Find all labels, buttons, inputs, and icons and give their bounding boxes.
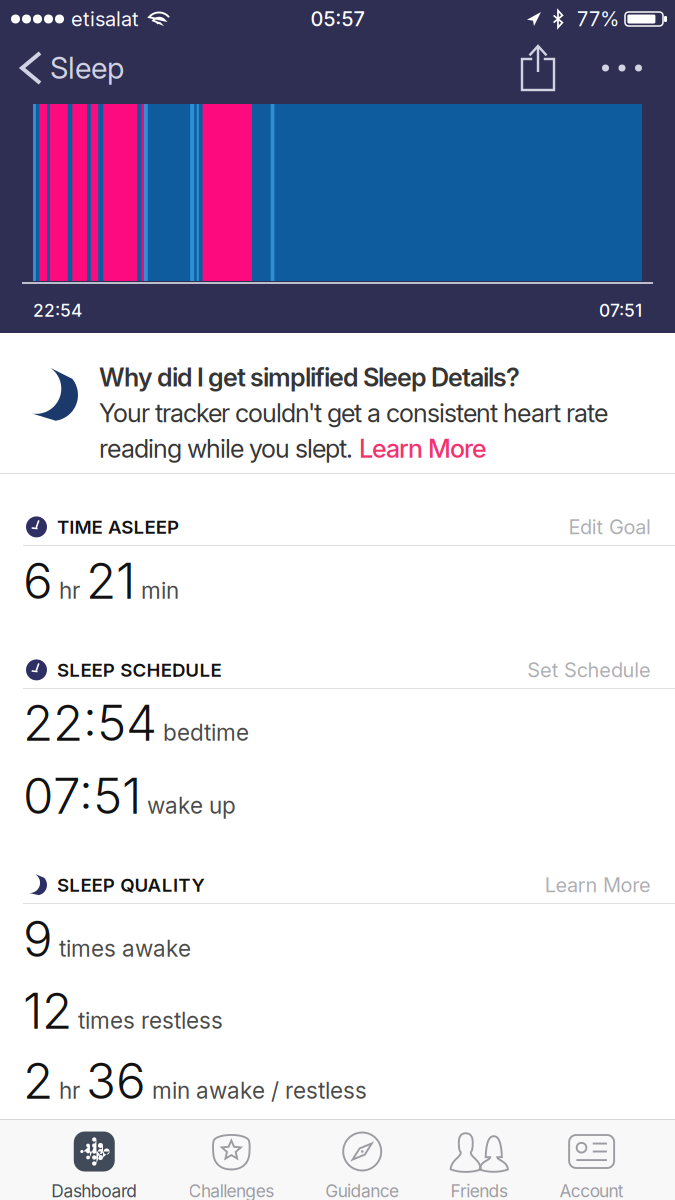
staticText: reading while you slept.	[99, 433, 359, 464]
staticText: Guidance	[325, 1180, 399, 1200]
staticText: Edit Goal	[568, 515, 651, 539]
button[interactable]: Dashboard	[51, 1119, 137, 1200]
staticText: 77%	[577, 7, 619, 31]
button[interactable]: Challenges	[188, 1119, 274, 1200]
staticText: 36	[86, 1051, 146, 1111]
staticText: TIME ASLEEP	[57, 516, 179, 538]
staticText: 2	[23, 1051, 53, 1111]
staticText: 22:54	[33, 300, 82, 321]
staticText: bedtime	[157, 719, 249, 746]
staticText: 07:51	[23, 766, 141, 826]
staticText: Dashboard	[51, 1180, 137, 1200]
staticText: times restless	[72, 1007, 223, 1034]
staticText: Challenges	[188, 1180, 274, 1200]
staticText: times awake	[53, 935, 191, 962]
staticText: min	[135, 577, 179, 604]
button[interactable]: Share	[508, 42, 568, 94]
staticText: wake up	[141, 792, 236, 819]
staticText: 07:51	[599, 300, 642, 321]
staticText: min awake / restless	[146, 1077, 367, 1104]
staticText: Your tracker couldn't get a consistent h…	[99, 398, 608, 428]
button[interactable]: Account	[559, 1119, 624, 1200]
button[interactable]: More options	[568, 42, 675, 94]
button[interactable]: Edit Goal	[550, 509, 651, 545]
button[interactable]: Friends	[450, 1119, 508, 1200]
button[interactable]: Guidance	[325, 1119, 399, 1200]
staticText: 22:54	[23, 693, 157, 753]
staticText: 12	[23, 981, 72, 1041]
staticText: Set Schedule	[527, 658, 651, 682]
staticText: Sleep	[50, 50, 124, 86]
button[interactable]: Set Schedule	[509, 652, 651, 688]
staticText: hr	[53, 1077, 86, 1104]
staticText: SLEEP QUALITY	[57, 874, 204, 896]
staticText: Account	[559, 1180, 624, 1200]
button[interactable]: Why did I get simplified Sleep Details?	[0, 333, 675, 474]
staticText: 6	[23, 551, 53, 611]
button[interactable]: Learn More	[527, 867, 651, 903]
staticText: etisalat	[71, 7, 139, 31]
staticText: 05:57	[310, 7, 364, 31]
staticText: Why did I get simplified Sleep Details?	[99, 362, 520, 393]
button[interactable]: Sleep	[0, 42, 140, 94]
staticText: hr	[53, 577, 86, 604]
staticText: Friends	[451, 1180, 508, 1200]
staticText: SLEEP SCHEDULE	[57, 659, 222, 681]
staticText: 21	[86, 551, 135, 611]
staticText: 9	[23, 909, 53, 969]
staticText: Learn More	[545, 873, 651, 897]
staticText: Learn More	[359, 433, 487, 464]
